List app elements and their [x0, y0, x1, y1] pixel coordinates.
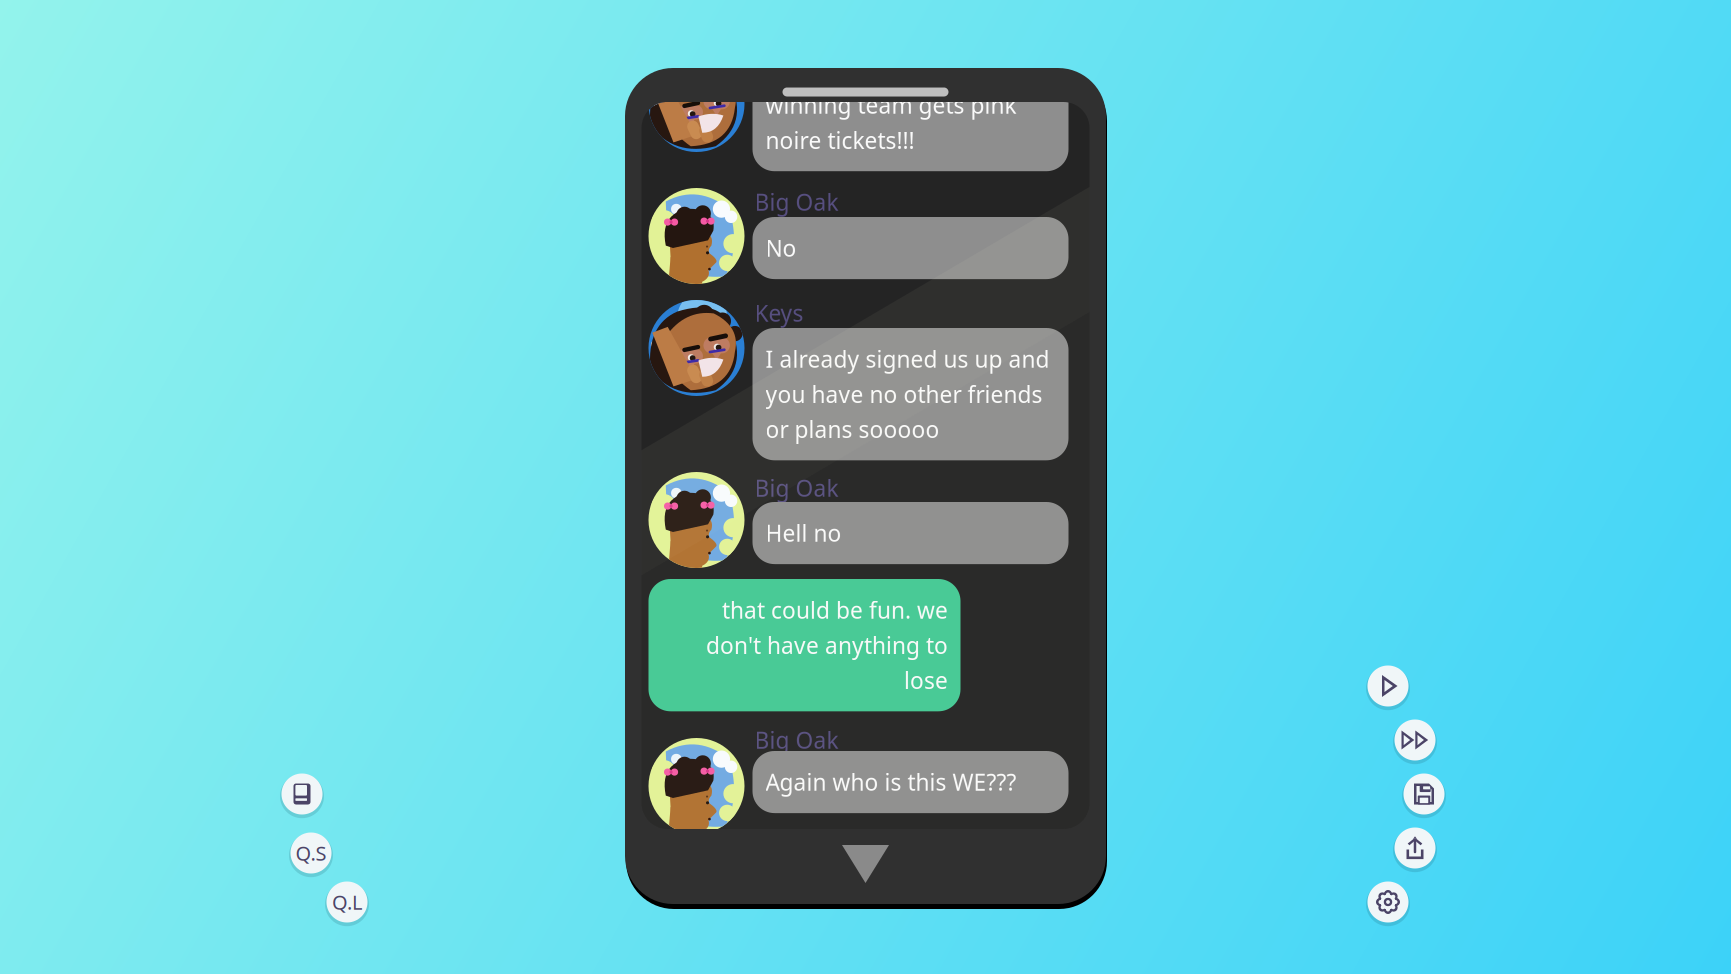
button[interactable]: Save	[1402, 771, 1446, 817]
staticText: Q.S	[295, 840, 326, 866]
button[interactable]: Quick save	[289, 830, 333, 876]
staticText: Big Oak	[754, 473, 838, 503]
staticText: Q.L	[332, 889, 362, 915]
button[interactable]: Share	[1393, 825, 1437, 871]
button[interactable]: Auto play	[1366, 663, 1410, 709]
button[interactable]: Story log	[280, 771, 324, 817]
staticText: Keys	[754, 298, 803, 328]
staticText: I already signed us up and you have no o…	[765, 344, 1049, 444]
button[interactable]: Settings	[1366, 879, 1410, 925]
staticText: winning team gets pink noire tickets!!!	[765, 90, 1016, 155]
staticText: Hell no	[765, 518, 841, 548]
staticText: No	[765, 233, 796, 263]
staticText: Again who is this WE???	[765, 767, 1016, 797]
staticText: Big Oak	[754, 725, 838, 755]
button[interactable]: Quick load	[325, 879, 369, 925]
staticText: Big Oak	[754, 187, 838, 217]
button[interactable]: Skip	[1393, 717, 1437, 763]
staticText: that could be fun. we don't have anythin…	[705, 595, 947, 695]
